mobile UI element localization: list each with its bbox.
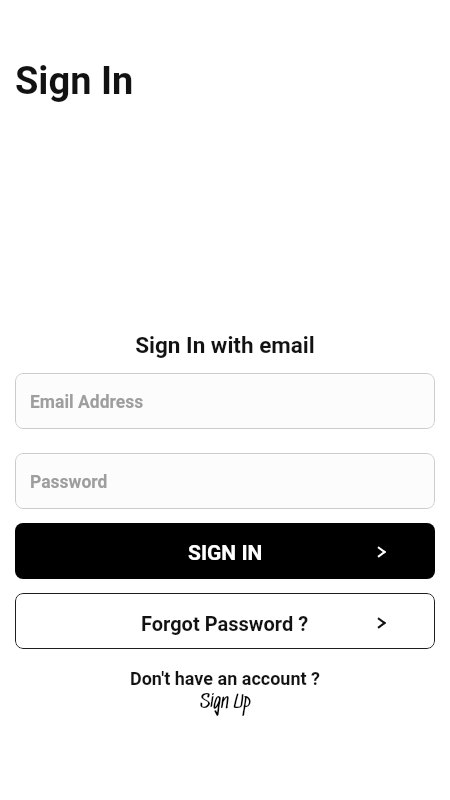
staticText: Password <box>30 472 108 493</box>
staticText: Sign In <box>15 59 134 104</box>
button[interactable]: Sign Up <box>196 692 255 713</box>
staticText: Sign In with email <box>0 332 450 358</box>
button[interactable]: SIGN IN <box>15 523 435 579</box>
button[interactable]: Password <box>15 453 435 509</box>
other: Forgot password <box>375 617 387 629</box>
other: Sign in <box>375 546 387 558</box>
staticText: Forgot Password ? <box>141 612 309 635</box>
staticText: Email Address <box>30 392 144 413</box>
button[interactable]: Email Address <box>15 373 435 429</box>
staticText: SIGN IN <box>188 541 263 566</box>
staticText: Don't have an account ? <box>0 668 450 689</box>
button[interactable]: Forgot Password ? <box>15 593 435 649</box>
staticText: Sign Up <box>200 692 251 713</box>
